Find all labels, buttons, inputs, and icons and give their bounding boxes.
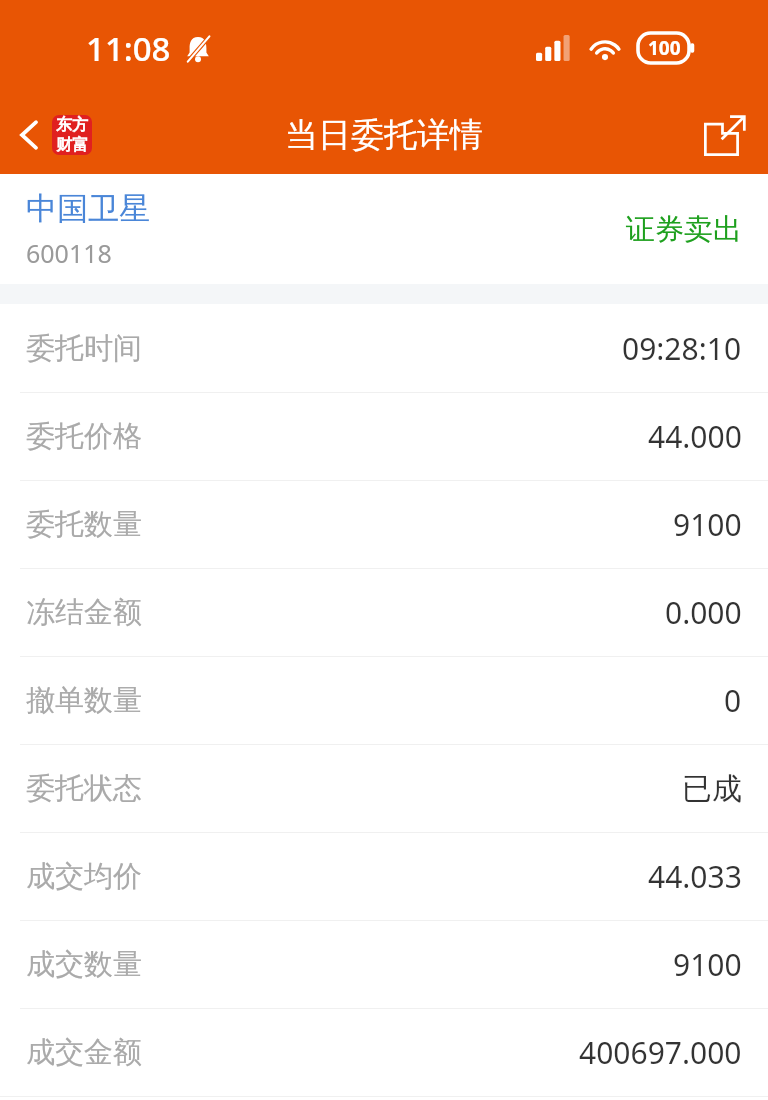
staticText: 9100 bbox=[673, 504, 742, 545]
button[interactable]: 撤单数量 bbox=[0, 657, 768, 744]
staticText: 东方 bbox=[56, 115, 88, 135]
staticText: 财富 bbox=[56, 135, 88, 155]
staticText: 400697.000 bbox=[579, 1032, 742, 1073]
staticText: 证券卖出 bbox=[0, 211, 742, 248]
staticText: 0.000 bbox=[665, 592, 742, 633]
button[interactable]: 成交数量 bbox=[0, 921, 768, 1008]
staticText: 成交金额 bbox=[26, 1034, 142, 1071]
button[interactable]: 委托状态 bbox=[0, 745, 768, 832]
staticText: 09:28:10 bbox=[622, 328, 742, 369]
staticText: 已成 bbox=[682, 770, 742, 808]
staticText: 委托价格 bbox=[26, 418, 142, 455]
button[interactable]: 冻结金额 bbox=[0, 569, 768, 656]
button[interactable]: 委托数量 bbox=[0, 481, 768, 568]
staticText: 600118 bbox=[26, 236, 112, 270]
staticText: 100 bbox=[648, 35, 681, 61]
button[interactable]: 中国卫星 bbox=[0, 174, 768, 284]
staticText: 撤单数量 bbox=[26, 682, 142, 719]
button[interactable]: 成交均价 bbox=[0, 833, 768, 920]
staticText: 0 bbox=[724, 680, 742, 721]
staticText: 11:08 bbox=[86, 26, 171, 71]
button[interactable]: 分享 bbox=[682, 102, 768, 168]
button[interactable]: 委托时间 bbox=[0, 304, 768, 392]
staticText: 委托状态 bbox=[26, 770, 142, 807]
staticText: 中国卫星 bbox=[26, 189, 150, 228]
staticText: 委托时间 bbox=[26, 330, 142, 367]
staticText: 成交均价 bbox=[26, 858, 142, 895]
staticText: 成交数量 bbox=[26, 946, 142, 983]
button[interactable]: 返回 东方财富 bbox=[0, 107, 106, 163]
staticText: 当日委托详情 bbox=[285, 114, 483, 156]
staticText: 44.033 bbox=[648, 856, 742, 897]
staticText: 9100 bbox=[673, 944, 742, 985]
button[interactable]: 成交金额 bbox=[0, 1009, 768, 1096]
staticText: 冻结金额 bbox=[26, 594, 142, 631]
button[interactable]: 委托价格 bbox=[0, 393, 768, 480]
staticText: 委托数量 bbox=[26, 506, 142, 543]
staticText: 44.000 bbox=[648, 416, 742, 457]
